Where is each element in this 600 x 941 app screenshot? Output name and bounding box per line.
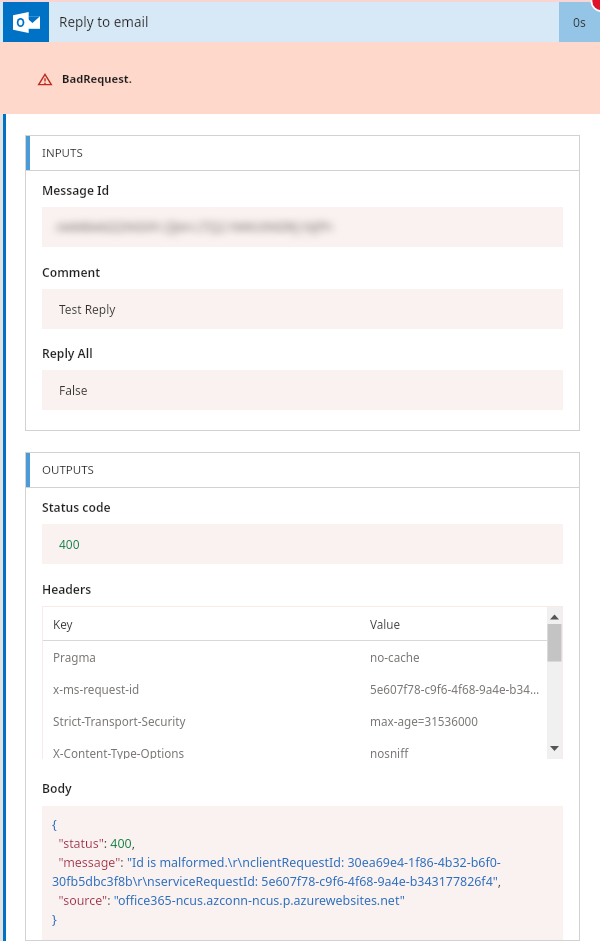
staticText: max-age=31536000: [370, 713, 547, 729]
staticText: Message Id: [42, 182, 110, 198]
staticText: Body: [42, 780, 72, 796]
button[interactable]: False: [42, 370, 563, 410]
staticText: X-Content-Type-Options: [53, 745, 185, 759]
staticText: BadRequest.: [62, 71, 132, 86]
staticText: Value: [370, 616, 547, 632]
staticText: 5e607f78-c9f6-4f68-9a4e-b34…: [370, 681, 547, 697]
button[interactable]: OUTPUTS: [26, 453, 579, 487]
button[interactable]: x-ms-request-id: [43, 673, 547, 705]
staticText: Headers: [42, 581, 92, 597]
staticText: False: [59, 382, 88, 398]
button[interactable]: 400: [42, 524, 563, 564]
button[interactable]: Test Reply: [42, 289, 563, 329]
staticText: Key: [53, 616, 73, 632]
staticText: Strict-Transport-Security: [53, 713, 186, 729]
button[interactable]: INPUTS: [26, 136, 579, 170]
staticText: 0s: [573, 14, 586, 31]
button[interactable]: AAMkAGI2NGVh Zjk4 LTQ2 NWUtNDRj NjFh: [42, 207, 563, 247]
staticText: AAMkAGI2NGVh Zjk4 LTQ2 NWUtNDRj NjFh: [57, 218, 332, 236]
staticText: "status": 400,: [52, 835, 136, 852]
button[interactable]: Strict-Transport-Security: [43, 705, 547, 737]
staticText: no-cache: [370, 649, 547, 665]
staticText: x-ms-request-id: [53, 681, 140, 697]
staticText: 30fb5dbc3f8b\r\nserviceRequestId: 5e607f…: [52, 873, 502, 890]
staticText: Test Reply: [59, 301, 116, 317]
staticText: OUTPUTS: [42, 462, 94, 478]
staticText: Pragma: [53, 649, 96, 665]
staticText: Reply to email: [59, 13, 149, 31]
button[interactable]: Scroll headers: [547, 607, 562, 759]
staticText: {: [52, 816, 57, 833]
button[interactable]: Office 365 Outlook connector: [3, 2, 49, 42]
staticText: Comment: [42, 264, 101, 280]
staticText: INPUTS: [42, 145, 83, 161]
staticText: Reply All: [42, 345, 93, 361]
staticText: nosniff: [370, 745, 547, 759]
button[interactable]: Pragma: [43, 641, 547, 673]
button[interactable]: 0s: [559, 2, 600, 42]
staticText: 400: [59, 536, 80, 552]
staticText: }: [52, 911, 57, 928]
staticText: "source": "office365-ncus.azconn-ncus.p.…: [52, 892, 405, 909]
button[interactable]: X-Content-Type-Options: [43, 737, 547, 759]
staticText: Status code: [42, 499, 111, 515]
staticText: "message": "Id is malformed.\r\nclientRe…: [52, 854, 501, 871]
